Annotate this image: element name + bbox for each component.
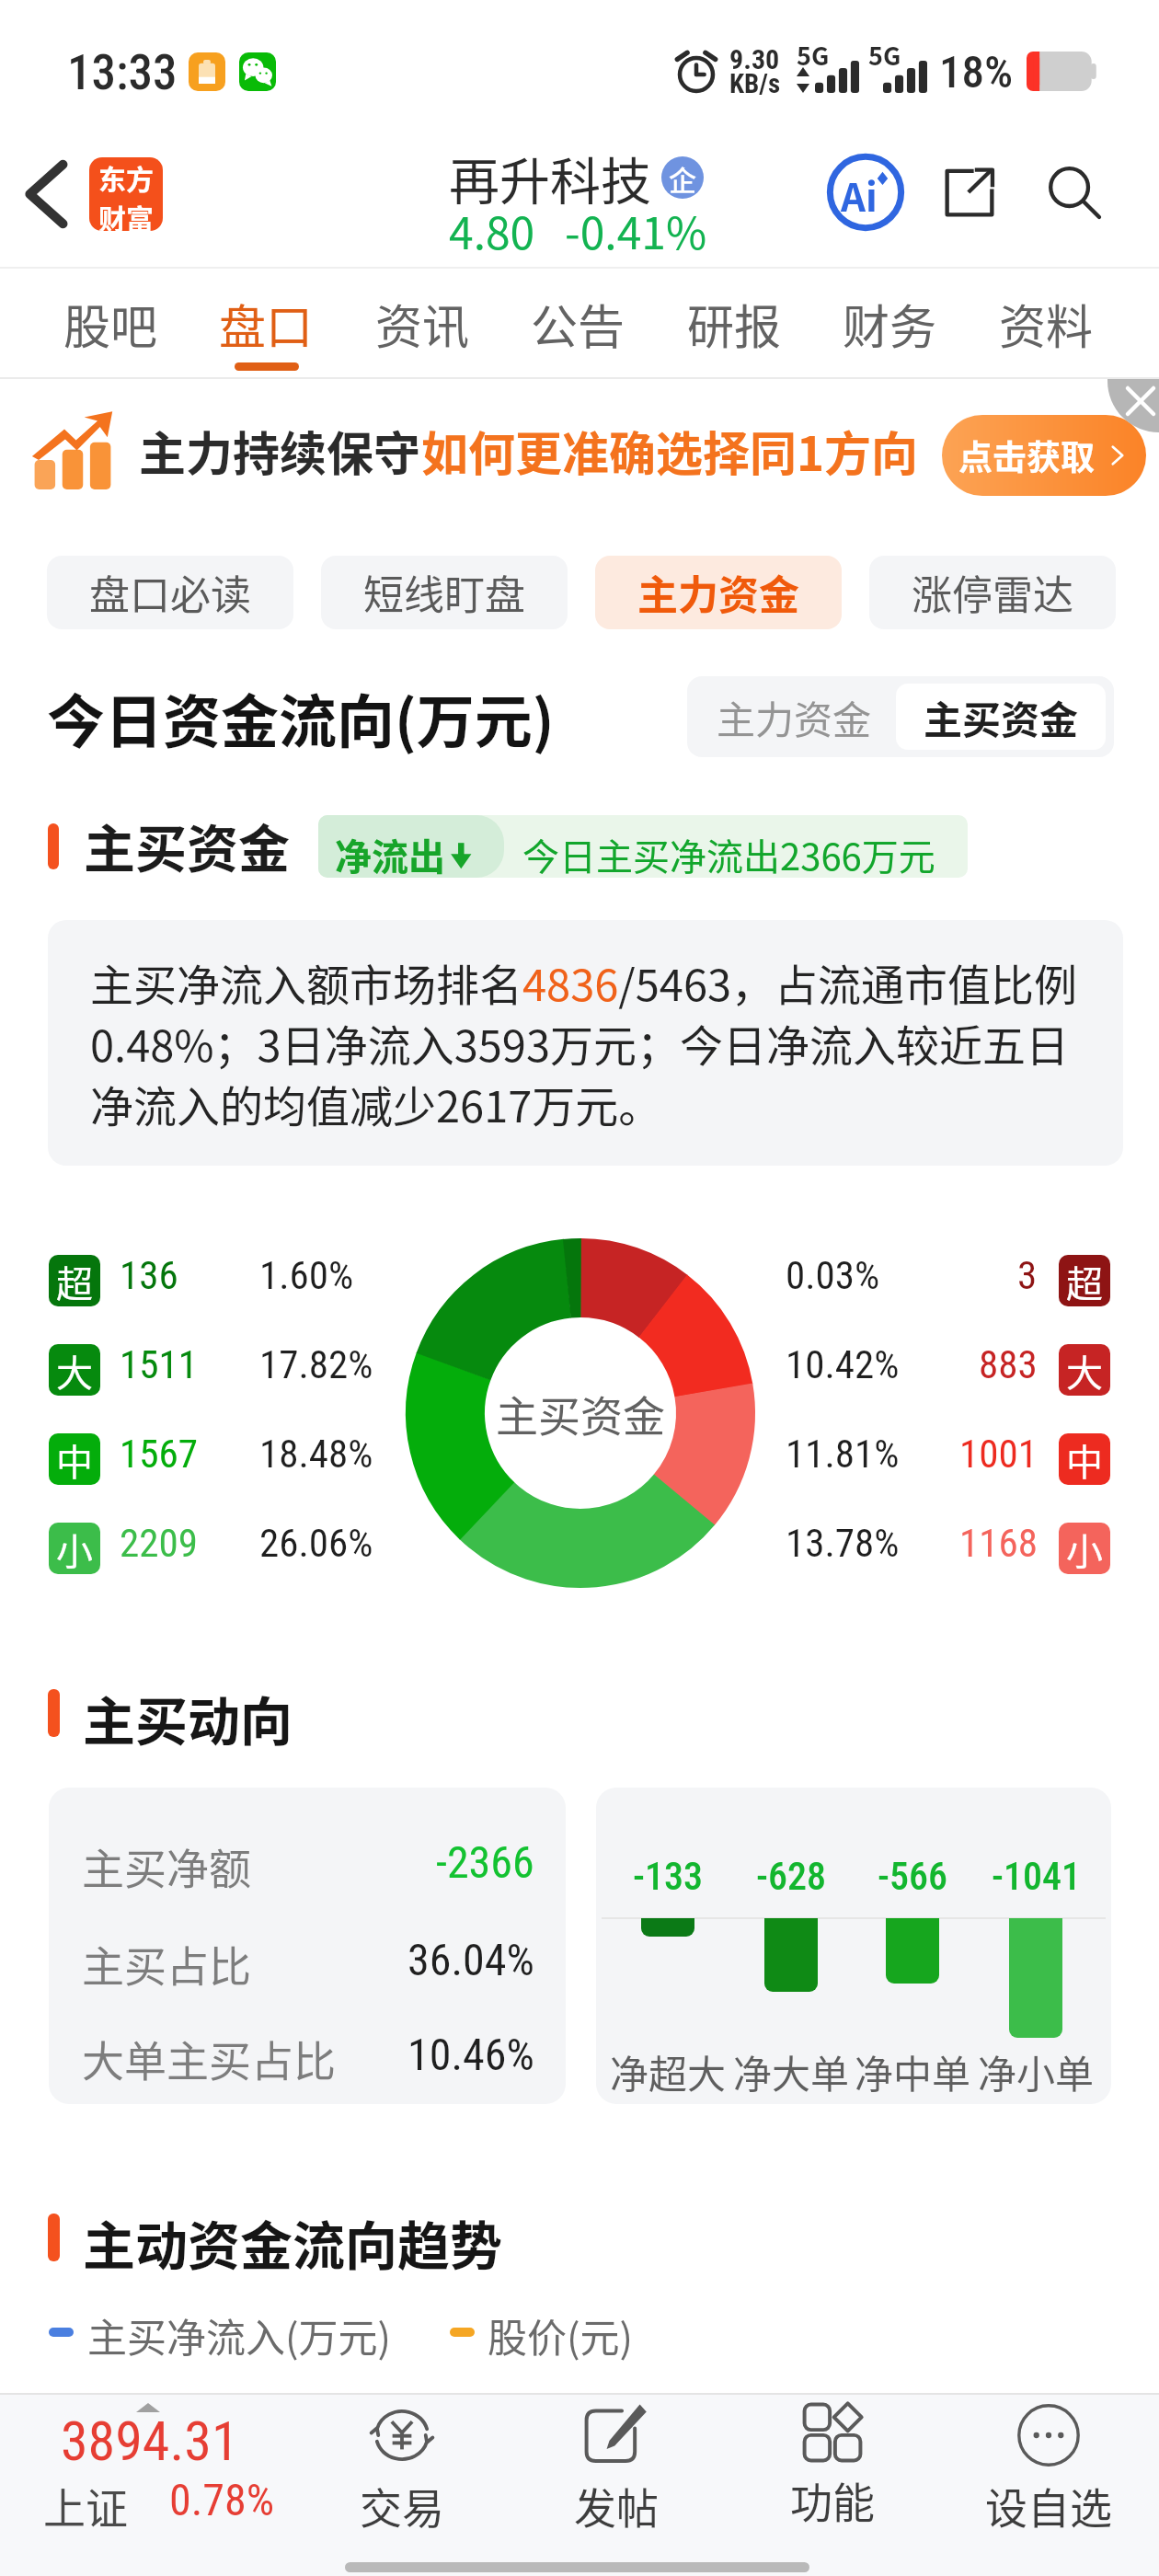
button[interactable]: Share bbox=[927, 150, 1012, 235]
staticText: 9.30 bbox=[729, 43, 780, 75]
staticText: 股价(元) bbox=[488, 2306, 634, 2363]
staticText: 交易 bbox=[360, 2475, 444, 2536]
button[interactable]: 主买资金 bbox=[896, 684, 1106, 750]
staticText: 36.04% bbox=[407, 1934, 534, 1985]
staticText: 2209 bbox=[120, 1520, 198, 1566]
staticText: 主力持续保守 bbox=[139, 417, 421, 485]
staticText: 3894.31 bbox=[61, 2409, 239, 2473]
staticText: 公告 bbox=[531, 290, 625, 358]
staticText: 发帖 bbox=[574, 2475, 659, 2536]
button[interactable]: 资料 bbox=[969, 267, 1123, 378]
staticText: 18% bbox=[939, 46, 1014, 98]
staticText: -2366 bbox=[436, 1836, 534, 1888]
staticText: 1511 bbox=[120, 1341, 198, 1387]
staticText: 中 bbox=[1066, 1433, 1103, 1485]
staticText: 功能 bbox=[790, 2469, 875, 2531]
staticText: 1567 bbox=[120, 1431, 198, 1477]
button[interactable]: 主力资金 bbox=[595, 556, 842, 629]
button[interactable]: Search bbox=[1032, 150, 1117, 235]
staticText: 再升科技 bbox=[449, 141, 652, 214]
staticText: 主买净流入额市场排名4836/5463，占流通市值比例0.48%；3日净流入35… bbox=[90, 950, 1090, 1134]
staticText: 26.06% bbox=[259, 1520, 373, 1566]
button[interactable]: 点击获取 bbox=[942, 415, 1146, 496]
staticText: 5G bbox=[797, 37, 830, 73]
button[interactable]: Close ad bbox=[1107, 379, 1159, 432]
staticText: 财富 bbox=[98, 197, 154, 231]
staticText: 0.03% bbox=[786, 1252, 880, 1298]
staticText: 大 bbox=[1066, 1344, 1103, 1396]
staticText: 136 bbox=[120, 1252, 178, 1298]
staticText: 1.60% bbox=[259, 1252, 354, 1298]
button[interactable]: 发帖 bbox=[529, 2398, 704, 2549]
staticText: 3 bbox=[1017, 1252, 1038, 1298]
staticText: 盘口 bbox=[219, 290, 314, 358]
staticText: 净大单 bbox=[733, 2043, 850, 2099]
staticText: 研报 bbox=[687, 290, 782, 358]
staticText: 设自选 bbox=[985, 2475, 1112, 2536]
staticText: 小 bbox=[56, 1523, 93, 1574]
button[interactable]: 设自选 bbox=[961, 2398, 1136, 2549]
button[interactable]: 主力资金 bbox=[687, 676, 901, 757]
staticText: 5G bbox=[868, 37, 901, 73]
staticText: -133 bbox=[633, 1854, 703, 1899]
staticText: 10.42% bbox=[786, 1341, 900, 1387]
button[interactable]: 东方 bbox=[89, 157, 163, 231]
button[interactable]: 研报 bbox=[657, 267, 811, 378]
staticText: 主动资金流向趋势 bbox=[83, 2204, 502, 2281]
staticText: 主买动向 bbox=[83, 1680, 293, 1756]
button[interactable]: 资讯 bbox=[345, 267, 499, 378]
staticText: -628 bbox=[756, 1854, 826, 1899]
button[interactable]: 公告 bbox=[500, 267, 655, 378]
staticText: 资讯 bbox=[375, 290, 470, 358]
staticText: 净中单 bbox=[855, 2043, 971, 2099]
staticText: 企 bbox=[669, 158, 696, 198]
staticText: 1168 bbox=[959, 1520, 1038, 1566]
staticText: 超 bbox=[1066, 1255, 1103, 1306]
staticText: 主买资金 bbox=[496, 1383, 665, 1444]
button[interactable]: 股吧 bbox=[33, 267, 188, 378]
button[interactable]: 盘口必读 bbox=[47, 556, 293, 629]
staticText: -566 bbox=[878, 1854, 947, 1899]
staticText: 股吧 bbox=[63, 290, 158, 358]
staticText: 财务 bbox=[843, 290, 937, 358]
staticText: 今日主买净流出2366万元 bbox=[522, 828, 935, 878]
staticText: 净小单 bbox=[978, 2043, 1095, 2099]
staticText: 13.78% bbox=[786, 1520, 900, 1566]
staticText: 18.48% bbox=[259, 1431, 373, 1477]
staticText: 11.81% bbox=[786, 1431, 900, 1477]
staticText: 点击获取 bbox=[958, 431, 1095, 480]
button[interactable]: 交易 bbox=[315, 2398, 489, 2549]
button[interactable]: 3894.31 bbox=[18, 2393, 322, 2549]
staticText: 如何更准确选择同1方向 bbox=[421, 417, 919, 485]
button[interactable]: 短线盯盘 bbox=[321, 556, 568, 629]
staticText: 主买净额 bbox=[82, 1835, 251, 1897]
button[interactable]: 财务 bbox=[812, 267, 967, 378]
staticText: 资料 bbox=[999, 290, 1094, 358]
button[interactable]: 盘口 bbox=[189, 267, 343, 378]
staticText: 净超大 bbox=[610, 2043, 727, 2099]
staticText: KB/s bbox=[729, 68, 781, 99]
staticText: 主买资金 bbox=[924, 689, 1079, 745]
staticText: 盘口必读 bbox=[89, 563, 251, 622]
staticText: 中 bbox=[56, 1433, 93, 1485]
staticText: 主力资金 bbox=[637, 563, 799, 622]
staticText: 主买净流入(万元) bbox=[87, 2306, 392, 2363]
staticText: 涨停雷达 bbox=[912, 563, 1073, 622]
button[interactable]: 涨停雷达 bbox=[869, 556, 1116, 629]
staticText: 主买资金 bbox=[84, 808, 290, 882]
button[interactable]: AI assistant bbox=[823, 150, 908, 235]
staticText: 13:33 bbox=[67, 44, 178, 101]
staticText: 17.82% bbox=[259, 1341, 373, 1387]
staticText: 短线盯盘 bbox=[363, 563, 525, 622]
staticText: 883 bbox=[979, 1341, 1038, 1387]
staticText: 0.78% bbox=[169, 2474, 275, 2525]
staticText: -1041 bbox=[992, 1854, 1081, 1899]
button[interactable]: 主力持续保守 bbox=[0, 370, 1159, 517]
staticText: 东方 bbox=[98, 157, 154, 197]
button[interactable]: 功能 bbox=[745, 2398, 920, 2549]
staticText: 大 bbox=[56, 1344, 93, 1396]
button[interactable]: Back bbox=[0, 152, 92, 236]
staticText: 主买占比 bbox=[82, 1933, 251, 1995]
staticText: 上证 bbox=[43, 2475, 128, 2536]
staticText: 净流出 bbox=[335, 828, 445, 878]
